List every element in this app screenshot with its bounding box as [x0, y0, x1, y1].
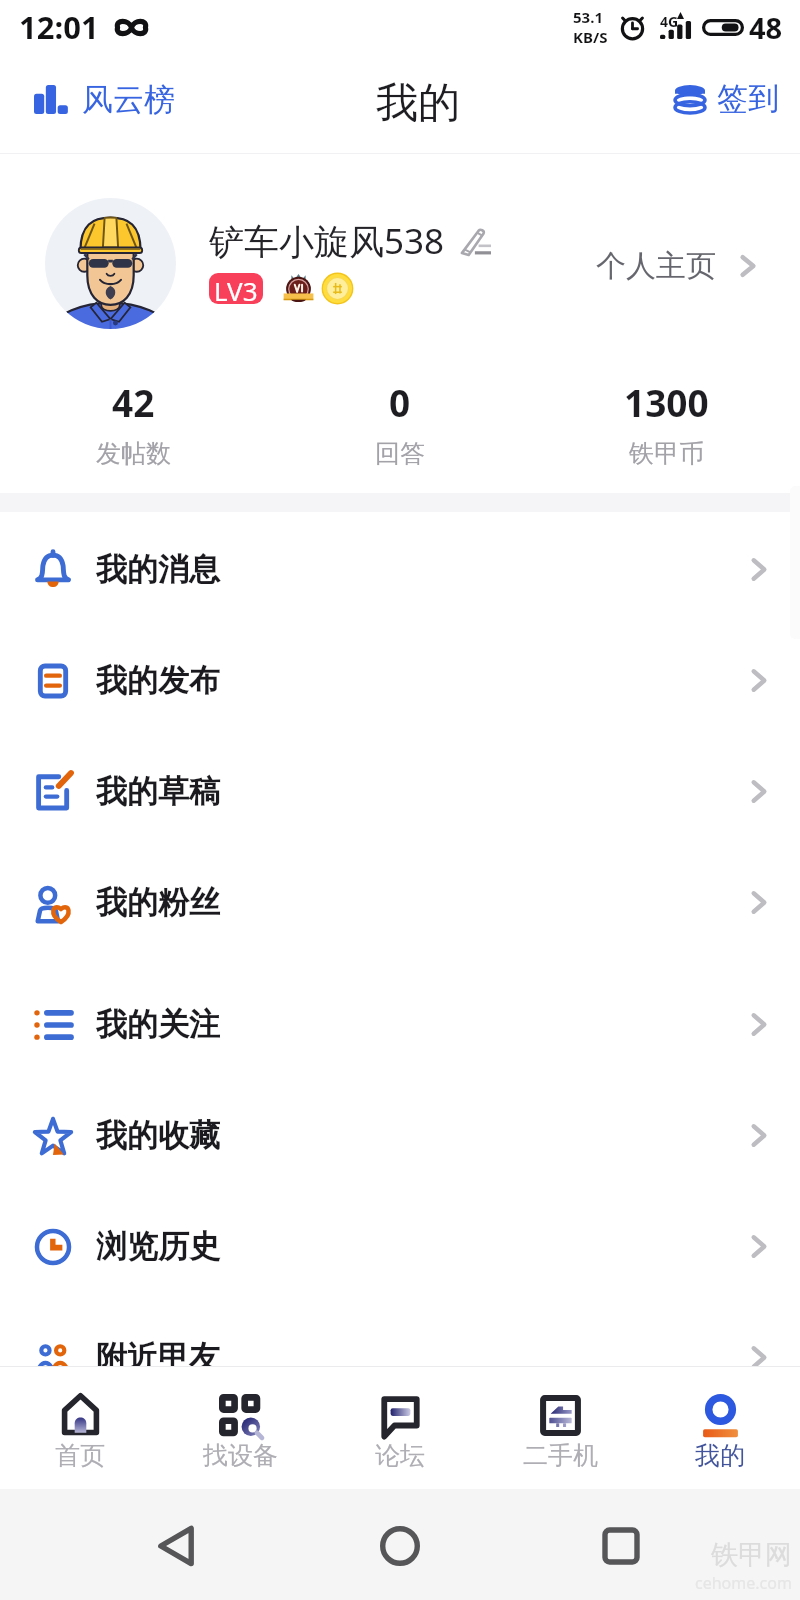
- button[interactable]: 我的: [640, 1367, 800, 1489]
- staticText: 0: [389, 377, 411, 427]
- staticText: 我的消息: [96, 550, 220, 589]
- staticText: 我的发布: [96, 661, 220, 700]
- button[interactable]: 二手机: [480, 1367, 640, 1489]
- staticText: 找设备: [203, 1440, 278, 1471]
- button[interactable]: 个人主页: [574, 233, 800, 299]
- button[interactable]: 我的关注: [0, 969, 800, 1080]
- staticText: 签到: [717, 79, 779, 118]
- button[interactable]: 首页: [0, 1367, 160, 1489]
- button[interactable]: 我的粉丝: [0, 847, 800, 958]
- staticText: 风云榜: [82, 80, 175, 119]
- staticText: 首页: [55, 1440, 105, 1471]
- staticText: 4G: [660, 12, 679, 31]
- button[interactable]: Home: [365, 1511, 435, 1581]
- staticText: 论坛: [375, 1440, 425, 1471]
- staticText: 48: [749, 8, 783, 47]
- button[interactable]: 0: [266, 370, 533, 493]
- button[interactable]: 浏览历史: [0, 1191, 800, 1302]
- staticText: 42: [112, 377, 155, 427]
- staticText: 铲车小旋风538: [209, 217, 445, 265]
- staticText: 铁甲网: [711, 1538, 792, 1572]
- staticText: 我的关注: [96, 1005, 220, 1044]
- staticText: 12:01: [19, 6, 99, 48]
- staticText: 我的收藏: [96, 1116, 220, 1155]
- button[interactable]: 我的收藏: [0, 1080, 800, 1191]
- staticText: 我的草稿: [96, 772, 220, 811]
- button[interactable]: LV3: [209, 273, 263, 304]
- staticText: 铁甲币: [629, 438, 704, 469]
- staticText: 浏览历史: [96, 1227, 220, 1266]
- staticText: 我的: [695, 1440, 745, 1471]
- button[interactable]: 我的消息: [0, 514, 800, 625]
- staticText: LV3: [214, 273, 258, 304]
- button[interactable]: Avatar: [45, 198, 176, 329]
- button[interactable]: Back: [141, 1511, 211, 1581]
- staticText: 我的粉丝: [96, 883, 220, 922]
- staticText: 53.1: [573, 7, 603, 27]
- button[interactable]: 1300: [533, 370, 800, 493]
- button[interactable]: 附近甲友: [0, 1302, 800, 1413]
- staticText: 1300: [624, 377, 709, 427]
- button[interactable]: Edit name: [460, 228, 491, 255]
- button[interactable]: 找设备: [160, 1367, 320, 1489]
- staticText: 二手机: [523, 1440, 598, 1471]
- staticText: 个人主页: [596, 247, 716, 285]
- staticText: 回答: [375, 438, 425, 469]
- button[interactable]: 签到: [657, 65, 800, 132]
- staticText: 附近甲友: [96, 1338, 220, 1377]
- button[interactable]: 我的发布: [0, 625, 800, 736]
- button[interactable]: Recents: [586, 1511, 656, 1581]
- staticText: 发帖数: [96, 438, 171, 469]
- button[interactable]: 论坛: [320, 1367, 480, 1489]
- staticText: 我的: [376, 77, 460, 130]
- button[interactable]: 风云榜: [0, 66, 193, 133]
- button[interactable]: 我的草稿: [0, 736, 800, 847]
- staticText: KB/S: [573, 27, 608, 47]
- staticText: cehome.com: [695, 1572, 792, 1594]
- button[interactable]: 42: [0, 370, 266, 493]
